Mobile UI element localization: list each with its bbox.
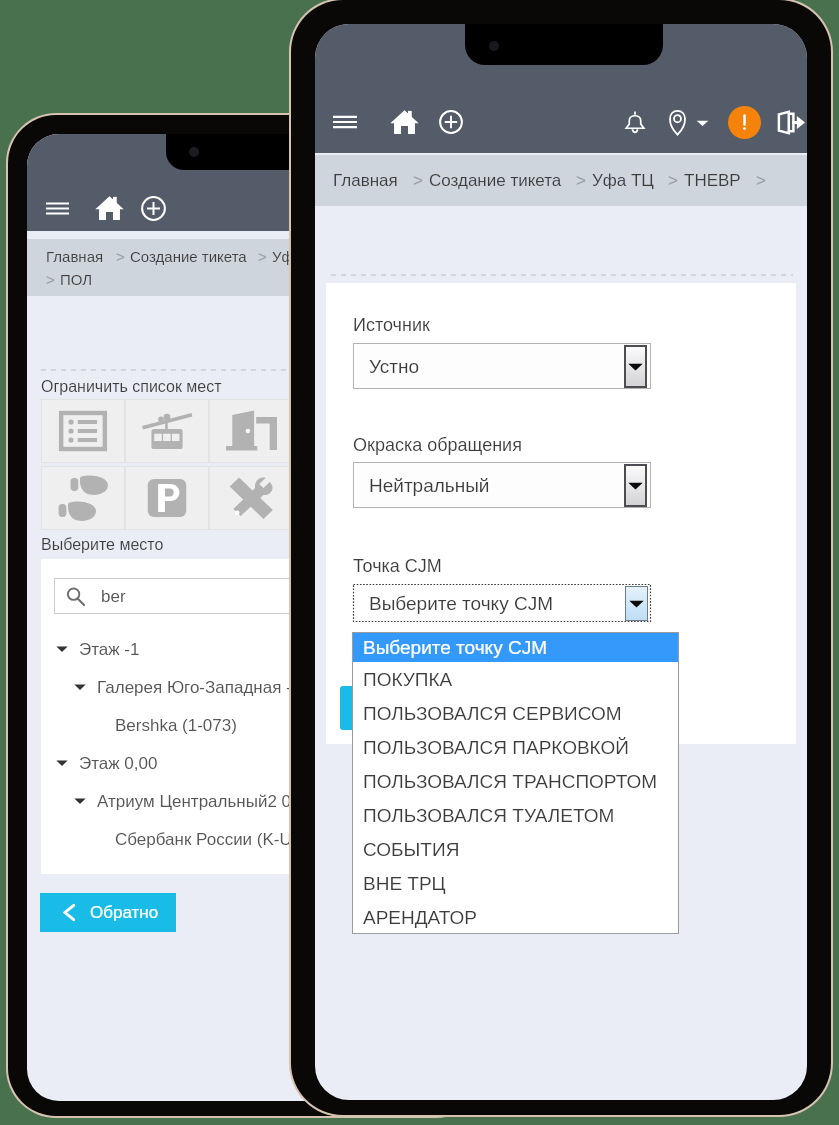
staticText: > [413, 171, 423, 190]
staticText: Нейтральный [369, 475, 490, 496]
staticText: ПОЛЬЗОВАЛСЯ ТРАНСПОРТОМ [363, 771, 658, 792]
staticText: Выберите точку CJM [363, 637, 547, 658]
button[interactable]: Устно [353, 343, 651, 389]
button[interactable]: Menu [42, 193, 72, 223]
button[interactable]: ПОЛЬЗОВАЛСЯ ПАРКОВКОЙ [352, 730, 679, 764]
button[interactable]: Alerts [728, 106, 761, 139]
button[interactable]: Bershka (1-073) [41, 706, 465, 744]
button[interactable]: Home [388, 106, 420, 138]
button[interactable]: Галерея Юго-Западная -1 [41, 668, 465, 706]
staticText: Галерея Юго-Западная -1 [97, 678, 302, 697]
button[interactable]: Filter [209, 466, 293, 530]
staticText: Окраска обращения [353, 435, 522, 455]
button[interactable]: СОБЫТИЯ [352, 832, 679, 866]
staticText: Главная [333, 171, 398, 190]
staticText: Уфа ТЦ [272, 248, 327, 265]
staticText: СОБЫТИЯ [363, 839, 460, 860]
button[interactable]: Атриум Центральный2 0 [41, 782, 465, 820]
button[interactable]: ПОЛЬЗОВАЛСЯ СЕРВИСОМ [352, 696, 679, 730]
staticText: ПОЛЬЗОВАЛСЯ ТУАЛЕТОМ [363, 805, 615, 826]
staticText: АРЕНДАТОР [363, 907, 477, 928]
staticText: Точка CJM [353, 556, 442, 576]
button[interactable]: Обратно [40, 893, 176, 932]
staticText: ПОЛЬЗОВАЛСЯ ПАРКОВКОЙ [363, 737, 629, 758]
button[interactable]: Home [94, 193, 124, 223]
button[interactable]: ПОЛЬЗОВАЛСЯ ТУАЛЕТОМ [352, 798, 679, 832]
staticText: Этаж -1 [79, 640, 140, 659]
staticText: Устно [369, 356, 420, 377]
button[interactable]: Add [435, 106, 467, 138]
button[interactable]: Add [138, 193, 168, 223]
staticText: Выберите точку CJM [369, 593, 553, 614]
button[interactable]: Этаж 0,00 [41, 744, 465, 782]
staticText: ПОЛ [60, 271, 93, 288]
staticText: Главная [46, 248, 104, 265]
button[interactable]: ВНЕ ТРЦ [352, 866, 679, 900]
button[interactable]: Этаж -1 [41, 630, 465, 668]
button[interactable]: Filter [209, 399, 293, 463]
staticText: Этаж 0,00 [79, 754, 158, 773]
button[interactable]: АРЕНДАТОР [352, 900, 679, 934]
button[interactable]: Filter [41, 466, 125, 530]
staticText: Ограничить список мест [41, 378, 222, 396]
staticText: ber [101, 587, 126, 606]
staticText: Bershka (1-073) [115, 716, 237, 735]
staticText: ПОКУПКА [363, 669, 453, 690]
button[interactable]: Нейтральный [353, 462, 651, 508]
button[interactable]: Filter [293, 399, 377, 463]
staticText: > [116, 248, 125, 265]
button[interactable]: Location [664, 109, 709, 136]
button[interactable]: Сбербанк России (K-US [41, 820, 465, 858]
staticText: Создание тикета [429, 171, 562, 190]
button[interactable]: ПОКУПКА [352, 662, 679, 696]
staticText: > [756, 171, 766, 190]
staticText: Создание тикета [130, 248, 247, 265]
button[interactable]: ПОЛЬЗОВАЛСЯ ТРАНСПОРТОМ [352, 764, 679, 798]
button[interactable]: Notifications [618, 105, 652, 139]
staticText: Уфа ТЦ [592, 171, 654, 190]
button[interactable]: Filter [125, 399, 209, 463]
staticText: > [258, 248, 267, 265]
button[interactable]: Back [340, 686, 458, 730]
staticText: > [46, 271, 55, 288]
staticText: THEBP [684, 171, 741, 190]
staticText: Сбербанк России (K-US [115, 830, 304, 849]
staticText: Атриум Центральный2 0 [97, 792, 292, 811]
button[interactable]: Logout [774, 106, 806, 138]
staticText: Источник [353, 315, 430, 335]
button[interactable]: Menu [329, 106, 361, 138]
button[interactable]: Filter [41, 399, 125, 463]
button[interactable]: Search places [54, 578, 453, 614]
staticText: Выберите место [41, 536, 164, 554]
button[interactable]: Filter [293, 466, 377, 530]
staticText: > [576, 171, 586, 190]
staticText: Обратно [90, 903, 159, 922]
staticText: ВНЕ ТРЦ [363, 873, 446, 894]
staticText: ПОЛЬЗОВАЛСЯ СЕРВИСОМ [363, 703, 622, 724]
button[interactable]: Filter [125, 466, 209, 530]
button[interactable]: Выберите точку CJM [353, 584, 651, 622]
button[interactable]: Выберите точку CJM [352, 632, 679, 662]
staticText: > [668, 171, 678, 190]
